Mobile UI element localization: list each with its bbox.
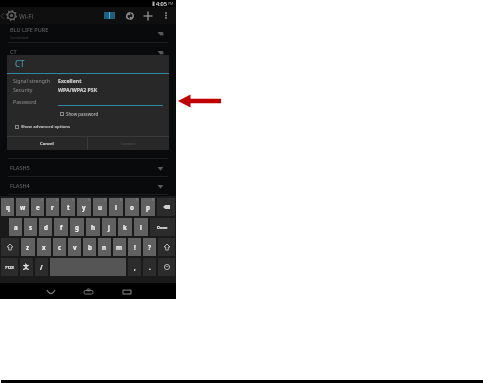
button[interactable]: h [86, 218, 100, 236]
staticText: Password [13, 98, 37, 105]
button[interactable]: f [54, 218, 68, 236]
staticText: 1 [11, 198, 13, 202]
button[interactable]: c [53, 238, 66, 256]
button[interactable]: , [128, 258, 141, 276]
staticText: ?123 [5, 265, 14, 270]
button[interactable]: ?123 [1, 258, 18, 276]
staticText: , [134, 263, 136, 271]
button[interactable]: Show advanced options [15, 124, 71, 130]
button[interactable]: g [70, 218, 84, 236]
staticText: p [146, 203, 150, 211]
button[interactable]: m [113, 238, 126, 256]
staticText: ? [148, 243, 151, 251]
staticText: 0 [152, 198, 154, 202]
staticText: i [115, 203, 117, 211]
button[interactable]: x [37, 238, 51, 256]
button[interactable]: Scan [124, 7, 136, 24]
staticText: FLASH4 [10, 182, 30, 190]
button[interactable]: 3 [31, 198, 44, 216]
staticText: Connect [121, 141, 136, 146]
button[interactable] [158, 238, 175, 256]
button[interactable]: 文 [20, 258, 33, 276]
button[interactable]: More options [160, 7, 172, 24]
button[interactable]: CT [0, 43, 176, 61]
staticText: y [82, 203, 86, 211]
button[interactable]: Wi-Fi toggle [104, 12, 115, 19]
button[interactable]: ! [128, 238, 141, 256]
staticText: ! [134, 243, 136, 251]
staticText: q [6, 203, 10, 211]
staticText: 8 [120, 198, 122, 202]
staticText: Excellent [58, 77, 82, 84]
button[interactable]: k [118, 218, 132, 236]
staticText: s [29, 223, 33, 231]
button[interactable]: 8 [109, 198, 123, 216]
staticText: r [51, 203, 54, 211]
staticText: CT [15, 58, 25, 69]
staticText: 文 [23, 263, 30, 271]
button[interactable] [158, 258, 175, 276]
staticText: FLASH5 [10, 164, 30, 172]
button[interactable]: 5 [61, 198, 75, 216]
button[interactable]: ? [143, 238, 156, 256]
button[interactable]: Back [42, 283, 59, 299]
staticText: m [116, 243, 123, 251]
button[interactable]: 7 [93, 198, 107, 216]
button[interactable]: z [21, 238, 35, 256]
button[interactable] [157, 198, 175, 216]
button[interactable]: n [98, 238, 111, 256]
button[interactable]: 6 [77, 198, 91, 216]
button[interactable]: FLASH5 [0, 159, 176, 177]
staticText: PM [168, 1, 174, 6]
staticText: 6 [88, 198, 90, 202]
button[interactable]: l [134, 218, 148, 236]
button[interactable]: 4 [46, 198, 59, 216]
staticText: x [42, 243, 46, 251]
staticText: 2 [26, 198, 28, 202]
staticText: Show advanced options [21, 124, 71, 130]
button[interactable]: 0 [141, 198, 155, 216]
staticText: / [40, 263, 43, 271]
staticText: Show password [66, 111, 99, 117]
staticText: Signal strength [13, 77, 58, 84]
button[interactable]: d [39, 218, 52, 236]
staticText: d [44, 223, 48, 231]
staticText: Done [157, 225, 168, 230]
button[interactable]: j [102, 218, 116, 236]
button[interactable]: v [68, 238, 81, 256]
button[interactable]: Add network [141, 7, 155, 24]
staticText: j [108, 223, 110, 231]
staticText: 7 [104, 198, 106, 202]
staticText: a [14, 223, 18, 231]
staticText: 9 [136, 198, 138, 202]
button[interactable]: . [143, 258, 156, 276]
button[interactable]: a [9, 218, 22, 236]
button[interactable]: BLU LIFE PURE [0, 24, 176, 42]
button[interactable]: 9 [125, 198, 139, 216]
staticText: g [75, 223, 79, 231]
staticText: 5 [72, 198, 74, 202]
button[interactable]: Show password [60, 111, 99, 117]
staticText: 3 [41, 198, 43, 202]
button[interactable]: Cancel [7, 137, 87, 150]
button[interactable]: Home [80, 283, 97, 299]
button[interactable] [1, 238, 19, 256]
staticText: o [130, 203, 134, 211]
staticText: n [102, 243, 107, 251]
button[interactable]: / [35, 258, 48, 276]
button[interactable]: FLASH4 [0, 177, 176, 195]
staticText: Wi-Fi [19, 12, 34, 20]
button[interactable]: s [24, 218, 37, 236]
button[interactable]: Done [150, 218, 175, 236]
button[interactable]: 2 [16, 198, 29, 216]
staticText: c [58, 243, 62, 251]
button[interactable]: Recents [118, 283, 135, 299]
staticText: CT [10, 48, 17, 56]
staticText: t [67, 203, 70, 211]
staticText: z [26, 243, 30, 251]
staticText: Security [13, 86, 58, 93]
button[interactable]: b [83, 238, 96, 256]
button[interactable]: 1 [1, 198, 14, 216]
